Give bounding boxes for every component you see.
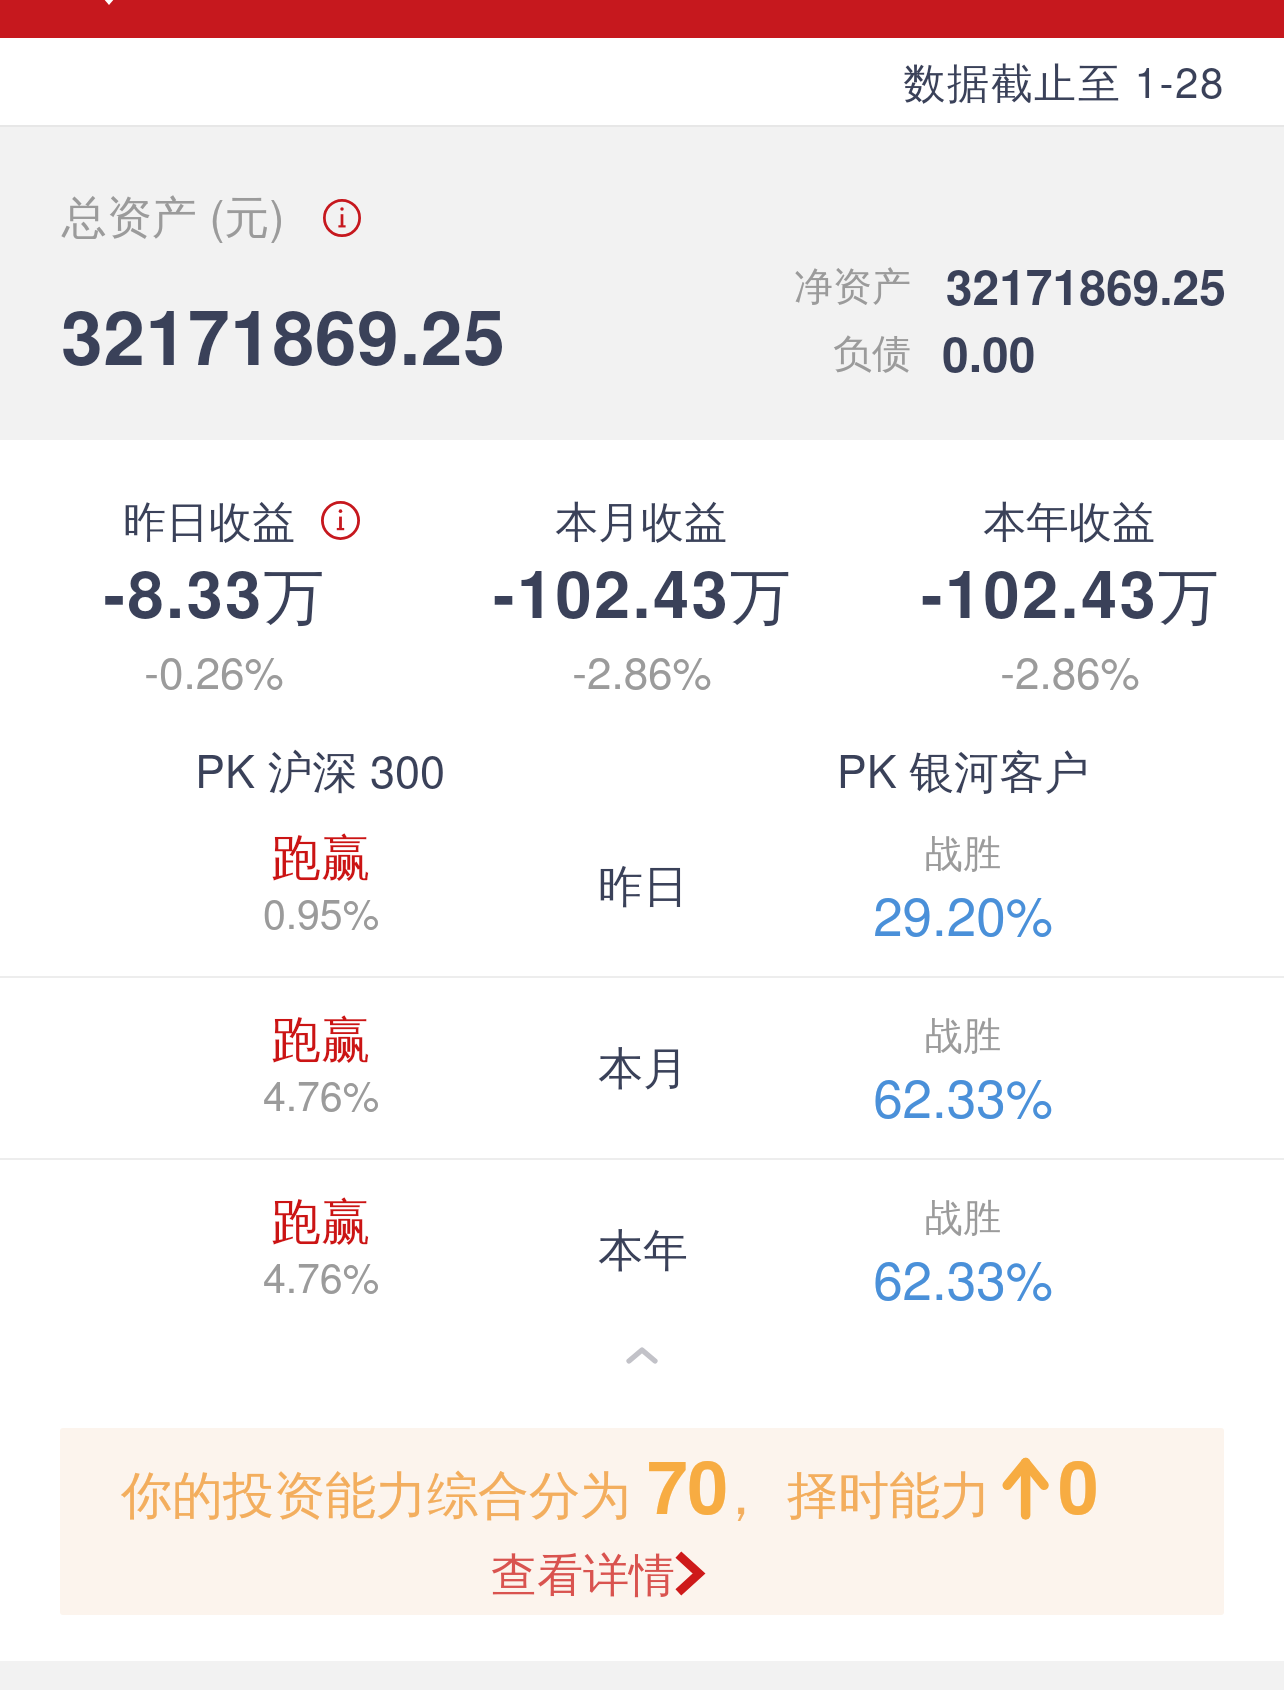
staticText: 0.95% <box>0 882 871 941</box>
staticText: 4.76% <box>0 1064 871 1123</box>
staticText: 32171869.25 <box>61 281 506 388</box>
staticText: 本月收益 <box>91 496 1191 550</box>
staticText: 净资产 <box>111 262 911 311</box>
button[interactable] <box>0 128 1284 438</box>
button[interactable] <box>0 794 1284 976</box>
staticText: 本月 <box>93 1041 1193 1098</box>
button[interactable] <box>0 1158 1284 1340</box>
staticText: 4.76% <box>0 1246 871 1305</box>
button[interactable] <box>428 470 856 700</box>
button[interactable]: 查看详情 <box>470 1532 720 1608</box>
staticText: -8.33万 <box>0 545 764 638</box>
staticText: PK 银河客户 <box>413 736 1284 801</box>
staticText: 0 <box>1058 1432 1099 1537</box>
staticText: 战胜 <box>413 830 1284 878</box>
button[interactable]: 收起 <box>572 1319 712 1391</box>
staticText: 战胜 <box>413 1194 1284 1242</box>
staticText: PK 沪深 300 <box>0 736 870 801</box>
button[interactable] <box>856 470 1284 700</box>
staticText: 战胜 <box>413 1012 1284 1060</box>
staticText: 昨日收益 <box>0 496 759 550</box>
staticText: -102.43万 <box>520 545 1284 638</box>
staticText: 本年收益 <box>519 496 1284 550</box>
staticText: 你的投资能力综合分为 <box>121 1464 631 1528</box>
staticText: 负债 <box>111 329 911 378</box>
staticText: 70 <box>647 1432 729 1537</box>
staticText: 62.33% <box>413 1057 1284 1133</box>
staticText: 总资产 (元) <box>62 181 285 246</box>
staticText: 跑赢 <box>0 827 871 890</box>
staticText: 查看详情 <box>491 1547 675 1605</box>
staticText: 择时能力 <box>787 1464 991 1528</box>
button[interactable]: 总资产说明 <box>316 192 368 244</box>
staticText: 昨日 <box>93 859 1193 916</box>
staticText: -102.43万 <box>92 545 1192 638</box>
staticText: -2.86% <box>92 638 1192 701</box>
staticText: -2.86% <box>520 638 1284 701</box>
staticText: -0.26% <box>0 638 764 701</box>
button[interactable] <box>60 1428 1224 1615</box>
staticText: 跑赢 <box>0 1191 871 1254</box>
staticText: 29.20% <box>413 875 1284 951</box>
staticText: 数据截止至 1-28 <box>425 50 1225 111</box>
staticText: 0.00 <box>942 318 1036 387</box>
button[interactable] <box>0 470 428 700</box>
staticText: 62.33% <box>413 1239 1284 1315</box>
staticText: ， <box>714 1462 768 1530</box>
button[interactable]: 昨日收益说明 <box>314 494 366 546</box>
staticText: 本年 <box>93 1223 1193 1280</box>
staticText: 32171869.25 <box>426 251 1226 320</box>
staticText: 跑赢 <box>0 1009 871 1072</box>
button[interactable] <box>0 976 1284 1158</box>
